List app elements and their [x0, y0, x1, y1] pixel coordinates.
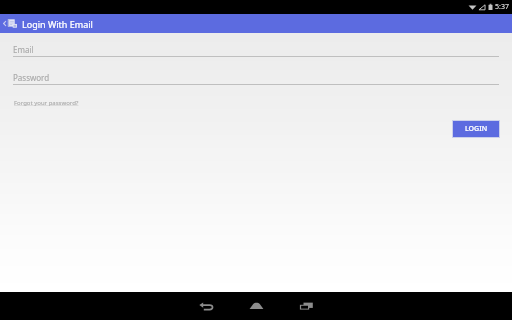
staticText: Email — [13, 44, 34, 55]
button[interactable]: Forgot your password? — [13, 97, 80, 109]
button[interactable]: Password — [0, 72, 512, 85]
button[interactable]: Navigate up — [1, 16, 20, 31]
staticText: LOGIN — [465, 124, 488, 134]
button[interactable]: Back — [181, 292, 231, 320]
button[interactable]: Home — [231, 292, 281, 320]
staticText: 5:37 — [495, 2, 509, 12]
button[interactable]: Email — [0, 44, 512, 57]
staticText: Login With Email — [22, 18, 93, 30]
staticText: Password — [13, 72, 50, 83]
button[interactable]: Recent apps — [281, 292, 331, 320]
staticText: Forgot your password? — [14, 99, 79, 107]
button[interactable]: LOGIN — [453, 121, 499, 137]
